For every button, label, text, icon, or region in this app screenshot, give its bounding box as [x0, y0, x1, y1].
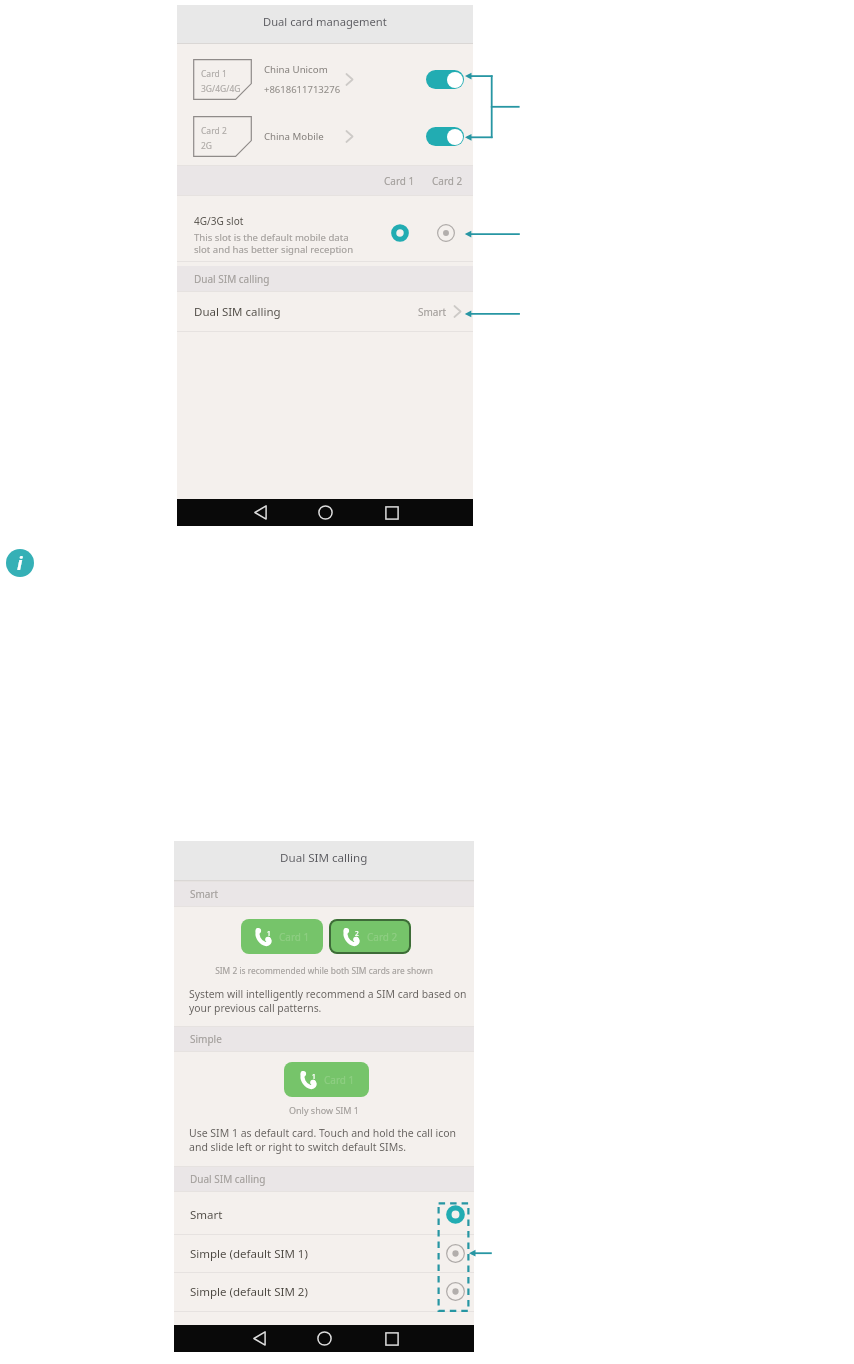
staticText: Dual card management [263, 14, 387, 29]
staticText: China Unicom [264, 63, 328, 76]
staticText: Simple (default SIM 1) [190, 1246, 308, 1262]
button[interactable]: Dual SIM calling [177, 292, 473, 331]
staticText: China Mobile [264, 130, 324, 143]
staticText: Card 1 [384, 174, 415, 188]
staticText: i [17, 551, 23, 576]
button[interactable]: Back [177, 499, 267, 526]
button[interactable]: Enable SIM card [426, 70, 464, 89]
staticText: Smart [418, 305, 447, 319]
staticText: 3G/4G/4G [201, 83, 241, 95]
staticText: This slot is the default mobile data slo… [194, 231, 354, 256]
button[interactable]: Recent apps [174, 1325, 399, 1352]
button[interactable]: 2 [329, 919, 411, 954]
button[interactable]: Simple (default SIM 1) [174, 1234, 474, 1273]
staticText: Dual SIM calling [280, 850, 368, 866]
button[interactable]: 4G/3G slot [177, 196, 473, 261]
button[interactable]: Simple (default SIM 2) [174, 1272, 474, 1311]
staticText: Card 1 [201, 68, 227, 80]
staticText: Dual SIM calling [194, 272, 270, 286]
staticText: Only show SIM 1 [174, 1104, 474, 1116]
button[interactable]: Card 2 [177, 112, 473, 161]
button[interactable]: Home [174, 1325, 332, 1352]
button[interactable]: Recent apps [177, 499, 399, 526]
staticText: Simple [190, 1032, 222, 1046]
staticText: System will intelligently recommend a SI… [189, 987, 467, 1015]
button[interactable]: 1 [284, 1062, 369, 1097]
staticText: 1 [267, 929, 271, 938]
button[interactable]: Enable SIM card [426, 127, 464, 146]
staticText: Card 2 [432, 174, 463, 188]
staticText: 2G [201, 140, 213, 152]
staticText: SIM 2 is recommended while both SIM card… [174, 965, 474, 976]
button[interactable]: 1 [241, 919, 323, 954]
staticText: Simple (default SIM 2) [190, 1284, 308, 1300]
staticText: Use SIM 1 as default card. Touch and hol… [189, 1126, 457, 1154]
staticText: Smart [190, 1207, 223, 1223]
staticText: 4G/3G slot [194, 214, 244, 228]
button[interactable]: Card 1 [177, 55, 473, 104]
button[interactable]: Information [6, 549, 34, 577]
staticText: +8618611713276 [264, 83, 341, 96]
button[interactable]: Smart [174, 1195, 474, 1234]
staticText: Card 2 [201, 125, 227, 137]
button[interactable]: Home [177, 499, 333, 526]
staticText: Card 1 [279, 930, 310, 944]
staticText: 2 [355, 929, 359, 938]
staticText: Dual SIM calling [190, 1172, 266, 1186]
staticText: Dual SIM calling [194, 304, 281, 320]
staticText: Card 2 [367, 930, 398, 944]
staticText: 1 [312, 1072, 316, 1081]
staticText: Smart [190, 887, 219, 901]
staticText: Card 1 [324, 1073, 355, 1087]
button[interactable]: Back [174, 1325, 266, 1352]
